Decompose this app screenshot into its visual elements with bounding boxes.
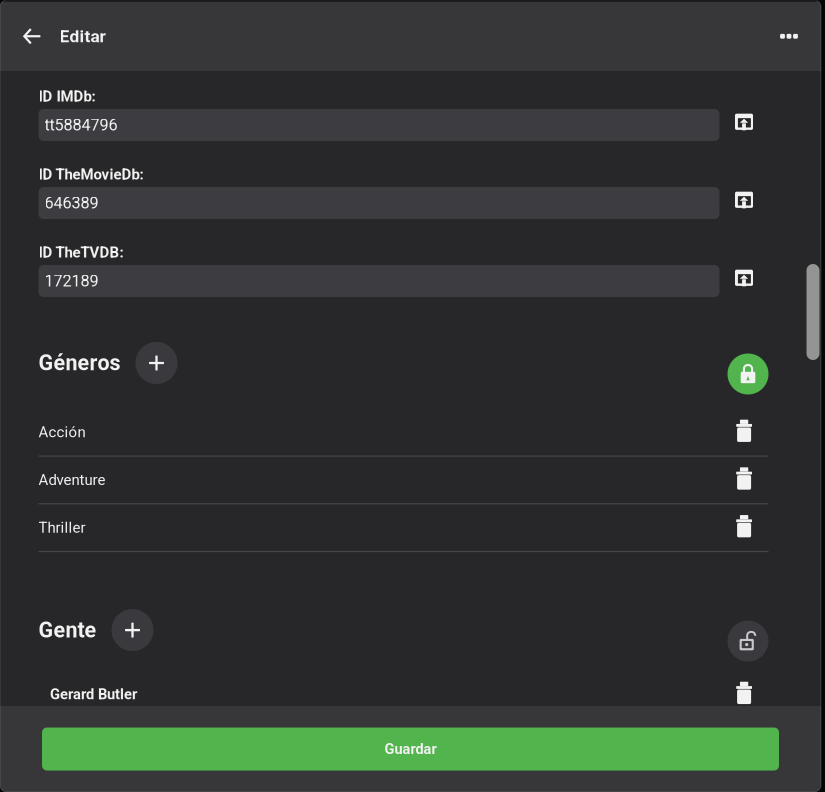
staticText: tt5884796 [44, 115, 117, 135]
staticText: Géneros [38, 350, 120, 376]
button[interactable]: Unlock Géneros [727, 342, 768, 383]
staticText: Thriller [38, 519, 85, 536]
button[interactable]: Gerard Butler [38, 671, 768, 719]
button[interactable]: Open link [728, 265, 759, 297]
staticText: Acción [38, 423, 85, 441]
button[interactable]: Add to Gente [111, 609, 153, 651]
button[interactable]: Open link [728, 109, 759, 141]
staticText: ID TheTVDB: [38, 244, 123, 261]
staticText: Guardar [384, 740, 436, 757]
staticText: Editar [59, 26, 105, 46]
staticText: Gerard Butler [50, 686, 137, 703]
staticText: Adventure [38, 471, 105, 489]
button[interactable]: Adventure [38, 457, 768, 504]
button[interactable]: Back [0, 16, 51, 56]
staticText: ID TheMovieDb: [38, 166, 143, 183]
staticText: 646389 [44, 193, 98, 213]
button[interactable]: Acción [38, 409, 768, 457]
button[interactable]: Add to Géneros [135, 342, 177, 384]
button[interactable]: Guardar [42, 727, 779, 770]
staticText: Gente [38, 617, 96, 643]
staticText: ID IMDb: [38, 88, 95, 105]
button[interactable]: Thriller [38, 504, 768, 552]
button[interactable]: Lock Gente [727, 610, 768, 651]
button[interactable]: Open link [728, 187, 759, 219]
button[interactable]: More options [769, 16, 821, 56]
staticText: 172189 [44, 271, 98, 291]
